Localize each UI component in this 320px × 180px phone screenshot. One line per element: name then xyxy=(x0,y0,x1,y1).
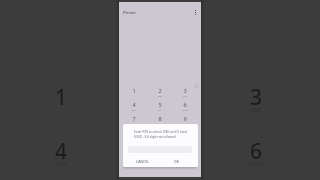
staticText: Enter PIN to unlock SIM card (3 tries) U… xyxy=(134,130,198,139)
staticText: ABC xyxy=(125,106,193,114)
staticText: 7 xyxy=(124,115,144,123)
staticText: OK xyxy=(174,159,179,164)
button[interactable]: 7 xyxy=(124,114,144,128)
staticText: JKL xyxy=(150,108,170,111)
staticText: CANCEL xyxy=(136,159,149,164)
button[interactable]: 5 xyxy=(150,100,170,114)
button[interactable]: More options xyxy=(191,8,200,17)
staticText: 9 xyxy=(175,115,195,123)
staticText: PQRS xyxy=(124,122,144,125)
button[interactable]: 2 xyxy=(150,86,170,100)
staticText: ABC xyxy=(150,94,170,97)
staticText: 6 xyxy=(175,101,195,109)
button[interactable]: 6 xyxy=(222,125,290,179)
button[interactable]: Phone xyxy=(123,10,136,16)
staticText: MNO xyxy=(175,108,195,111)
staticText: 3 xyxy=(175,87,195,95)
button[interactable]: 6 xyxy=(175,100,195,114)
button[interactable]: 3 xyxy=(175,86,195,100)
staticText: 2 xyxy=(150,87,170,95)
button[interactable]: 5 xyxy=(125,125,193,179)
staticText: 3 xyxy=(222,83,290,112)
staticText: 4 xyxy=(27,137,95,166)
button[interactable]: 4 xyxy=(124,100,144,114)
button[interactable]: 9 xyxy=(175,114,195,128)
staticText: 5 xyxy=(125,137,193,166)
button[interactable]: 4 xyxy=(27,125,95,179)
staticText: 8 xyxy=(150,115,170,123)
staticText: 5 xyxy=(150,101,170,109)
button[interactable]: 3 xyxy=(222,71,290,125)
staticText: DEF xyxy=(175,94,195,97)
button[interactable]: OK xyxy=(171,158,182,165)
staticText: 2 xyxy=(125,83,193,112)
staticText: Phone xyxy=(123,10,136,16)
staticText: TUV xyxy=(150,122,170,125)
button[interactable]: 1 xyxy=(124,86,144,100)
staticText: 1 xyxy=(124,87,144,95)
button[interactable]: 2 xyxy=(125,71,193,125)
staticText: 4 xyxy=(124,101,144,109)
button[interactable]: CANCEL xyxy=(133,158,152,165)
staticText: 1 xyxy=(27,83,95,112)
button[interactable]: 8 xyxy=(150,114,170,128)
staticText: 6 xyxy=(222,137,290,166)
staticText: GHI xyxy=(124,108,144,111)
staticText: WXYZ xyxy=(175,122,195,125)
staticText: JKL xyxy=(125,160,193,168)
